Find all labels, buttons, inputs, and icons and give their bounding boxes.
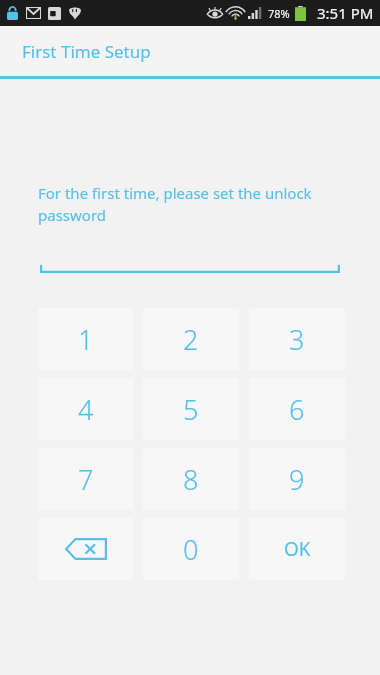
staticText: 9 [289,461,305,498]
button[interactable]: OK [249,518,345,580]
button[interactable]: 1 [38,308,133,370]
staticText: 2 [183,321,199,358]
button[interactable]: 8 [143,448,239,510]
button[interactable]: 7 [38,448,133,510]
staticText: 5 [183,391,199,428]
staticText: 0 [183,531,199,568]
button[interactable]: 4 [38,378,133,440]
staticText: 7 [78,461,94,498]
button[interactable]: 0 [143,518,239,580]
staticText: 8 [183,461,199,498]
button[interactable]: Backspace [38,518,133,580]
staticText: 3 [289,321,305,358]
button[interactable] [40,260,340,274]
staticText: 3:51 PM [317,3,374,23]
staticText: 6 [289,391,305,428]
button[interactable]: 6 [249,378,345,440]
staticText: OK [284,536,311,562]
staticText: 4 [78,391,94,428]
button[interactable]: 2 [143,308,239,370]
staticText: For the first time, please set the unloc… [38,183,344,226]
staticText: 1 [78,321,94,358]
staticText: First Time Setup [22,40,151,63]
staticText: 78% [268,6,290,21]
button[interactable]: 5 [143,378,239,440]
button[interactable]: 9 [249,448,345,510]
button[interactable]: 3 [249,308,345,370]
